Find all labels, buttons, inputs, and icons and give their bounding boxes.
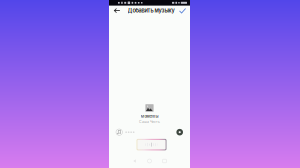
staticText: Саша Честь (139, 120, 160, 124)
button[interactable]: Music (116, 129, 122, 135)
button[interactable]: Play (176, 129, 183, 135)
button[interactable]: Back (111, 6, 123, 16)
button[interactable]: Home (147, 159, 151, 163)
staticText: Моменты (140, 114, 158, 119)
button[interactable]: Done (177, 6, 188, 16)
staticText: Добавить музыку (127, 7, 174, 14)
button[interactable]: Recents (162, 159, 166, 163)
button[interactable]: Back (132, 159, 136, 163)
